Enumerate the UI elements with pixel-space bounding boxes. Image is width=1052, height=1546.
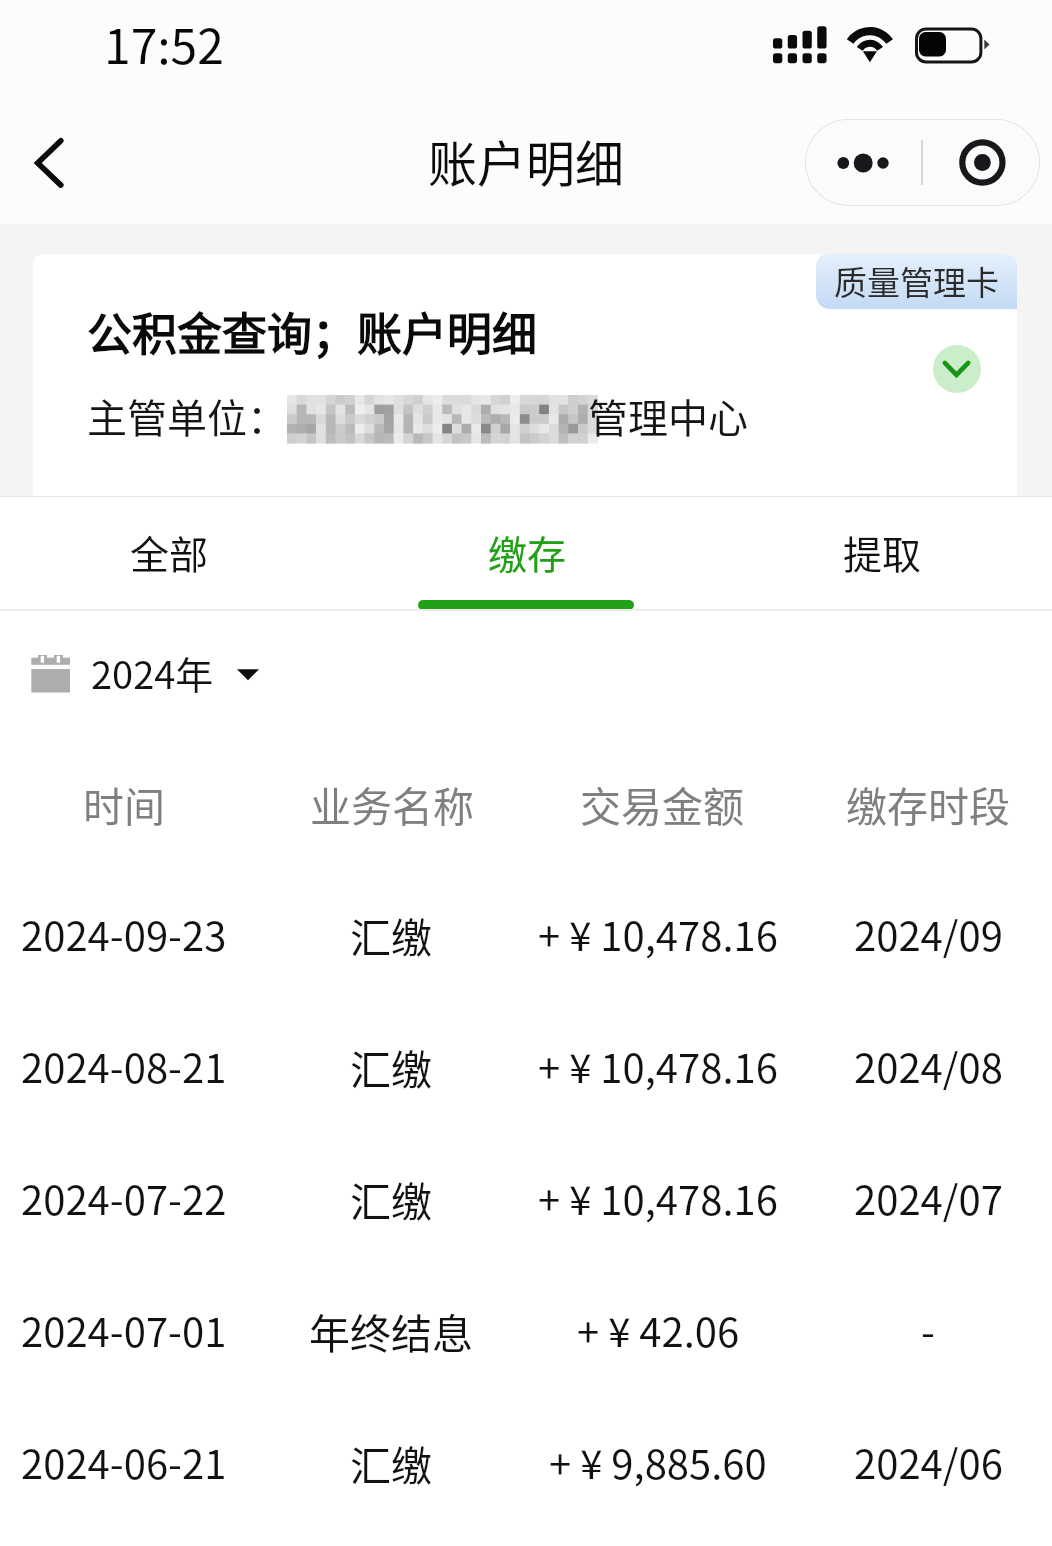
button[interactable]: 2024-07-01 — [0, 1264, 1052, 1396]
staticText: 账户明细 — [428, 125, 625, 196]
staticText: 汇缴 — [350, 1433, 432, 1492]
button[interactable]: 2024-06-21 — [0, 1396, 1052, 1528]
staticText: 汇缴 — [350, 1037, 432, 1096]
staticText: - — [921, 1301, 935, 1359]
staticText: 缴存时段 — [846, 774, 1010, 833]
button[interactable]: Expand card — [933, 345, 981, 393]
staticText: + ¥ 10,478.16 — [538, 1169, 778, 1227]
staticText: + ¥ 42.06 — [577, 1301, 740, 1359]
staticText: 质量管理卡 — [834, 257, 999, 305]
staticText: 年终结息 — [309, 1301, 473, 1360]
staticText: 全部 — [130, 524, 209, 580]
staticText: 17:52 — [104, 8, 224, 78]
button[interactable]: 提取 — [701, 497, 1052, 611]
button[interactable]: 2024-08-21 — [0, 1000, 1052, 1132]
button[interactable]: Back — [8, 100, 90, 182]
staticText: 业务名称 — [310, 774, 474, 833]
button[interactable]: Select year — [0, 611, 1052, 756]
staticText: 2024年 — [91, 645, 214, 700]
staticText: 2024/07 — [854, 1169, 1003, 1227]
staticText: 缴存 — [488, 524, 567, 580]
staticText: 汇缴 — [350, 905, 432, 964]
staticText: 公积金查询；账户明细 — [87, 299, 538, 364]
staticText: 2024-08-21 — [21, 1037, 227, 1095]
staticText: 提取 — [843, 524, 922, 580]
staticText: 管理中心 — [588, 387, 748, 445]
button[interactable]: 2024-07-22 — [0, 1132, 1052, 1264]
staticText: 2024/08 — [854, 1037, 1003, 1095]
staticText: 汇缴 — [350, 1169, 432, 1228]
staticText: 2024-07-22 — [21, 1169, 227, 1227]
button[interactable]: Close mini program — [922, 119, 1040, 206]
staticText: 2024-06-21 — [21, 1433, 227, 1491]
staticText: 交易金额 — [580, 774, 744, 833]
button[interactable]: More options — [805, 119, 922, 206]
staticText: + ¥ 9,885.60 — [549, 1433, 767, 1491]
staticText: 时间 — [83, 774, 165, 833]
staticText: 2024-07-01 — [21, 1301, 227, 1359]
button[interactable]: 全部 — [0, 497, 350, 611]
staticText: 2024/06 — [854, 1433, 1003, 1491]
button[interactable]: 质量管理卡 — [33, 254, 1017, 497]
button[interactable]: 2024-09-23 — [0, 868, 1052, 1000]
staticText: + ¥ 10,478.16 — [538, 905, 778, 963]
staticText: 2024-09-23 — [21, 905, 227, 963]
staticText: 主管单位： — [87, 387, 287, 445]
staticText: + ¥ 10,478.16 — [538, 1037, 778, 1095]
staticText: 2024/09 — [854, 905, 1003, 963]
button[interactable]: 缴存 — [350, 497, 701, 611]
